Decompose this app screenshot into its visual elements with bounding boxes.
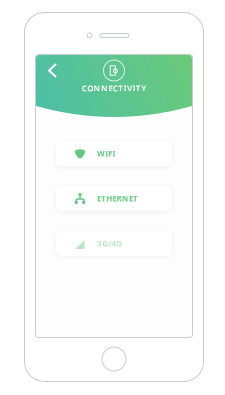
staticText: E (108, 83, 112, 94)
staticText: C (82, 83, 87, 94)
button[interactable]: 3 (56, 231, 172, 256)
staticText: E (97, 193, 101, 204)
staticText: N (94, 83, 101, 94)
staticText: G (117, 238, 123, 249)
staticText: T (136, 83, 141, 94)
staticText: F (108, 148, 112, 159)
button[interactable]: E (56, 186, 172, 211)
staticText: E (129, 193, 133, 204)
button[interactable]: W (56, 141, 172, 166)
staticText: I (112, 148, 115, 159)
staticText: H (106, 193, 112, 204)
staticText: / (108, 238, 111, 249)
staticText: T (133, 193, 138, 204)
staticText: E (112, 193, 116, 204)
staticText: I (132, 83, 135, 94)
staticText: N (101, 83, 108, 94)
staticText: 4 (111, 238, 116, 249)
staticText: I (124, 83, 127, 94)
staticText: Y (141, 83, 146, 94)
button[interactable]: Back (36, 59, 63, 82)
staticText: I (105, 148, 108, 159)
staticText: C (113, 83, 118, 94)
staticText: 3 (97, 238, 102, 249)
staticText: V (127, 83, 132, 94)
staticText: T (118, 83, 123, 94)
staticText: R (117, 193, 122, 204)
staticText: W (97, 148, 105, 159)
staticText: G (102, 238, 108, 249)
staticText: O (87, 83, 93, 94)
staticText: N (122, 193, 129, 204)
staticText: T (101, 193, 106, 204)
